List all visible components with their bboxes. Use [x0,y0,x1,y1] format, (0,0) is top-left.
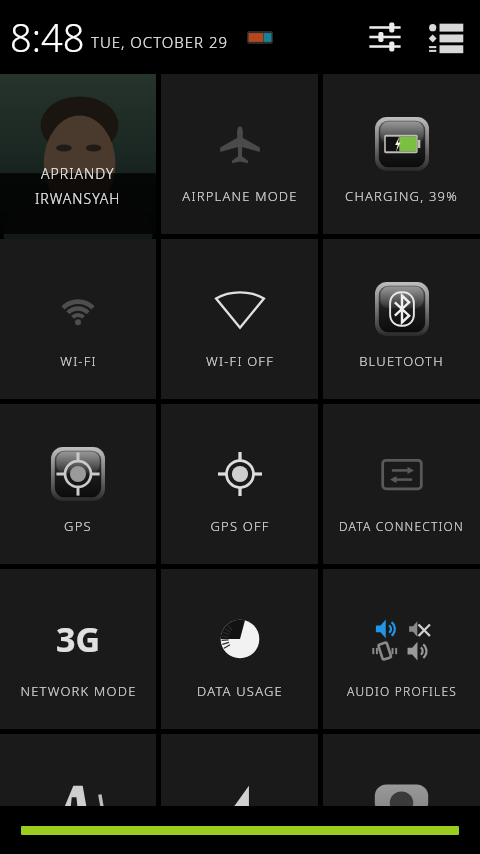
staticText: CHARGING, 39% [345,187,458,205]
button[interactable]: GPS off [161,404,318,564]
staticText: IRWANSYAH [35,189,121,208]
button[interactable]: User profile Apriandy Irwansyah [0,74,156,234]
staticText: DATA CONNECTION [339,518,464,534]
button[interactable]: Bluetooth [323,239,480,399]
staticText: WI-FI OFF [206,352,274,370]
staticText: DATA USAGE [197,682,283,700]
button[interactable]: Data connection [323,404,480,564]
button[interactable]: Settings [362,14,408,60]
button[interactable]: Network mode 3G [0,569,156,729]
staticText: GPS OFF [210,517,270,535]
button[interactable]: Brightness slider [0,806,480,854]
staticText: AUDIO PROFILES [347,683,457,699]
button[interactable]: Brightness [0,734,156,806]
staticText: 3G [56,616,101,662]
button[interactable]: Wi-Fi [0,239,156,399]
button[interactable]: Data usage [161,569,318,729]
button[interactable]: Airplane mode [161,74,318,234]
button[interactable]: GPS [0,404,156,564]
button[interactable]: Notifications [424,15,468,59]
button[interactable]: Volume [161,734,318,806]
staticText: TUE, OCTOBER 29 [91,32,229,52]
staticText: GPS [64,517,92,535]
button[interactable]: Settings shortcut [323,734,480,806]
staticText: WI-FI [60,352,97,370]
button[interactable]: Battery charging 39 percent [323,74,480,234]
staticText: BLUETOOTH [359,352,444,370]
staticText: APRIANDY [41,164,115,183]
staticText: AIRPLANE MODE [182,187,298,205]
button[interactable]: Audio profiles [323,569,480,729]
staticText: 8:48 [10,11,85,63]
button[interactable]: Wi-Fi off [161,239,318,399]
staticText: NETWORK MODE [20,682,137,700]
